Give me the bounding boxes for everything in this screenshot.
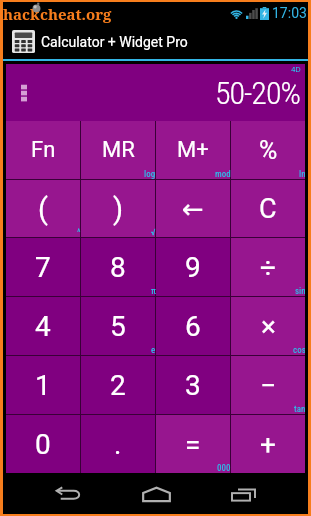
staticText: mod <box>215 169 231 180</box>
button[interactable]: − <box>231 356 305 414</box>
button[interactable]: ( <box>6 180 80 237</box>
button[interactable]: Recents <box>220 477 266 511</box>
staticText: 0 <box>35 428 51 461</box>
staticText: − <box>260 369 277 402</box>
button[interactable]: Back <box>45 477 91 511</box>
button[interactable]: 2 <box>81 356 155 414</box>
staticText: hack <box>3 4 40 24</box>
button[interactable]: = <box>156 415 230 473</box>
staticText: cos <box>293 345 306 356</box>
staticText: 3 <box>185 369 201 402</box>
button[interactable]: . <box>81 415 155 473</box>
staticText: √ <box>151 227 156 238</box>
button[interactable]: Home <box>133 477 179 511</box>
button[interactable]: 5 <box>81 297 155 355</box>
staticText: . <box>114 428 122 461</box>
staticText: 4D <box>291 65 301 74</box>
button[interactable]: MR <box>81 121 155 179</box>
button[interactable]: × <box>231 297 305 355</box>
staticText: sin <box>295 286 306 297</box>
staticText: 17:03 <box>272 5 307 21</box>
button[interactable]: Fn <box>6 121 80 179</box>
staticText: ln <box>299 169 306 180</box>
staticText: 1 <box>35 369 51 402</box>
staticText: 50-20% <box>215 74 300 112</box>
staticText: Calculator + Widget Pro <box>41 34 188 50</box>
staticText: ^ <box>77 227 81 238</box>
staticText: C <box>259 193 277 225</box>
staticText: e <box>151 345 156 356</box>
button[interactable]: 3 <box>156 356 230 414</box>
staticText: 5 <box>110 310 126 343</box>
staticText: 2 <box>110 369 126 402</box>
button[interactable]: ) <box>81 180 155 237</box>
staticText: tan <box>294 404 306 415</box>
button[interactable]: % <box>231 121 305 179</box>
staticText: Fn <box>31 137 56 163</box>
staticText: 8 <box>110 251 126 284</box>
button[interactable]: 4 <box>6 297 80 355</box>
button[interactable]: 8 <box>81 238 155 296</box>
button[interactable]: + <box>231 415 305 473</box>
button[interactable]: 1 <box>6 356 80 414</box>
staticText: 6 <box>185 310 201 343</box>
staticText: log <box>144 169 156 180</box>
staticText: ) <box>113 192 124 226</box>
staticText: = <box>185 428 201 461</box>
staticText: MR <box>102 137 135 163</box>
staticText: 9 <box>185 251 201 284</box>
button[interactable]: 9 <box>156 238 230 296</box>
staticText: ← <box>182 194 204 224</box>
staticText: M+ <box>177 137 209 163</box>
button[interactable]: Menu <box>21 84 27 102</box>
button[interactable]: M+ <box>156 121 230 179</box>
staticText: 4 <box>35 310 51 343</box>
staticText: cheat.org <box>40 4 112 24</box>
staticText: ÷ <box>260 251 276 284</box>
staticText: 000 <box>217 463 231 474</box>
button[interactable]: ÷ <box>231 238 305 296</box>
button[interactable]: 7 <box>6 238 80 296</box>
button[interactable]: 6 <box>156 297 230 355</box>
staticText: × <box>261 310 276 343</box>
button[interactable]: 0 <box>6 415 80 473</box>
staticText: ( <box>38 192 48 226</box>
button[interactable]: ← <box>156 180 230 237</box>
button[interactable]: Calculator + Widget Pro <box>3 24 308 59</box>
staticText: + <box>260 428 276 461</box>
staticText: % <box>259 136 278 165</box>
staticText: π <box>151 286 156 297</box>
button[interactable]: C <box>231 180 305 237</box>
staticText: 7 <box>35 251 51 284</box>
